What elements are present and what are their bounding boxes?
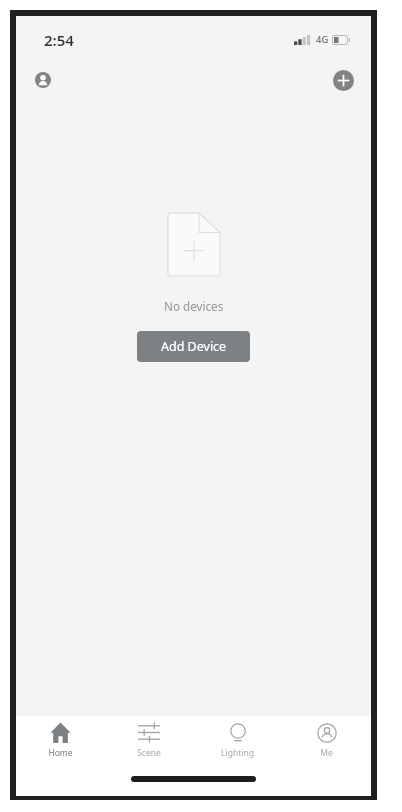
staticText: Me [320, 747, 333, 759]
staticText: No devices [164, 298, 224, 314]
button[interactable]: Home [16, 721, 104, 759]
staticText: 2:54 [44, 30, 74, 50]
button[interactable]: Scene [104, 721, 193, 759]
button[interactable]: Lighting [193, 721, 282, 759]
staticText: 4G [316, 33, 329, 46]
button[interactable]: Add device [323, 60, 363, 100]
button[interactable]: Me [282, 721, 371, 759]
button[interactable]: Add Device [137, 331, 250, 362]
button[interactable]: Account [23, 60, 63, 100]
staticText: Add Device [161, 338, 227, 355]
staticText: Lighting [221, 747, 254, 759]
staticText: Home [48, 747, 73, 759]
staticText: Scene [137, 747, 161, 759]
